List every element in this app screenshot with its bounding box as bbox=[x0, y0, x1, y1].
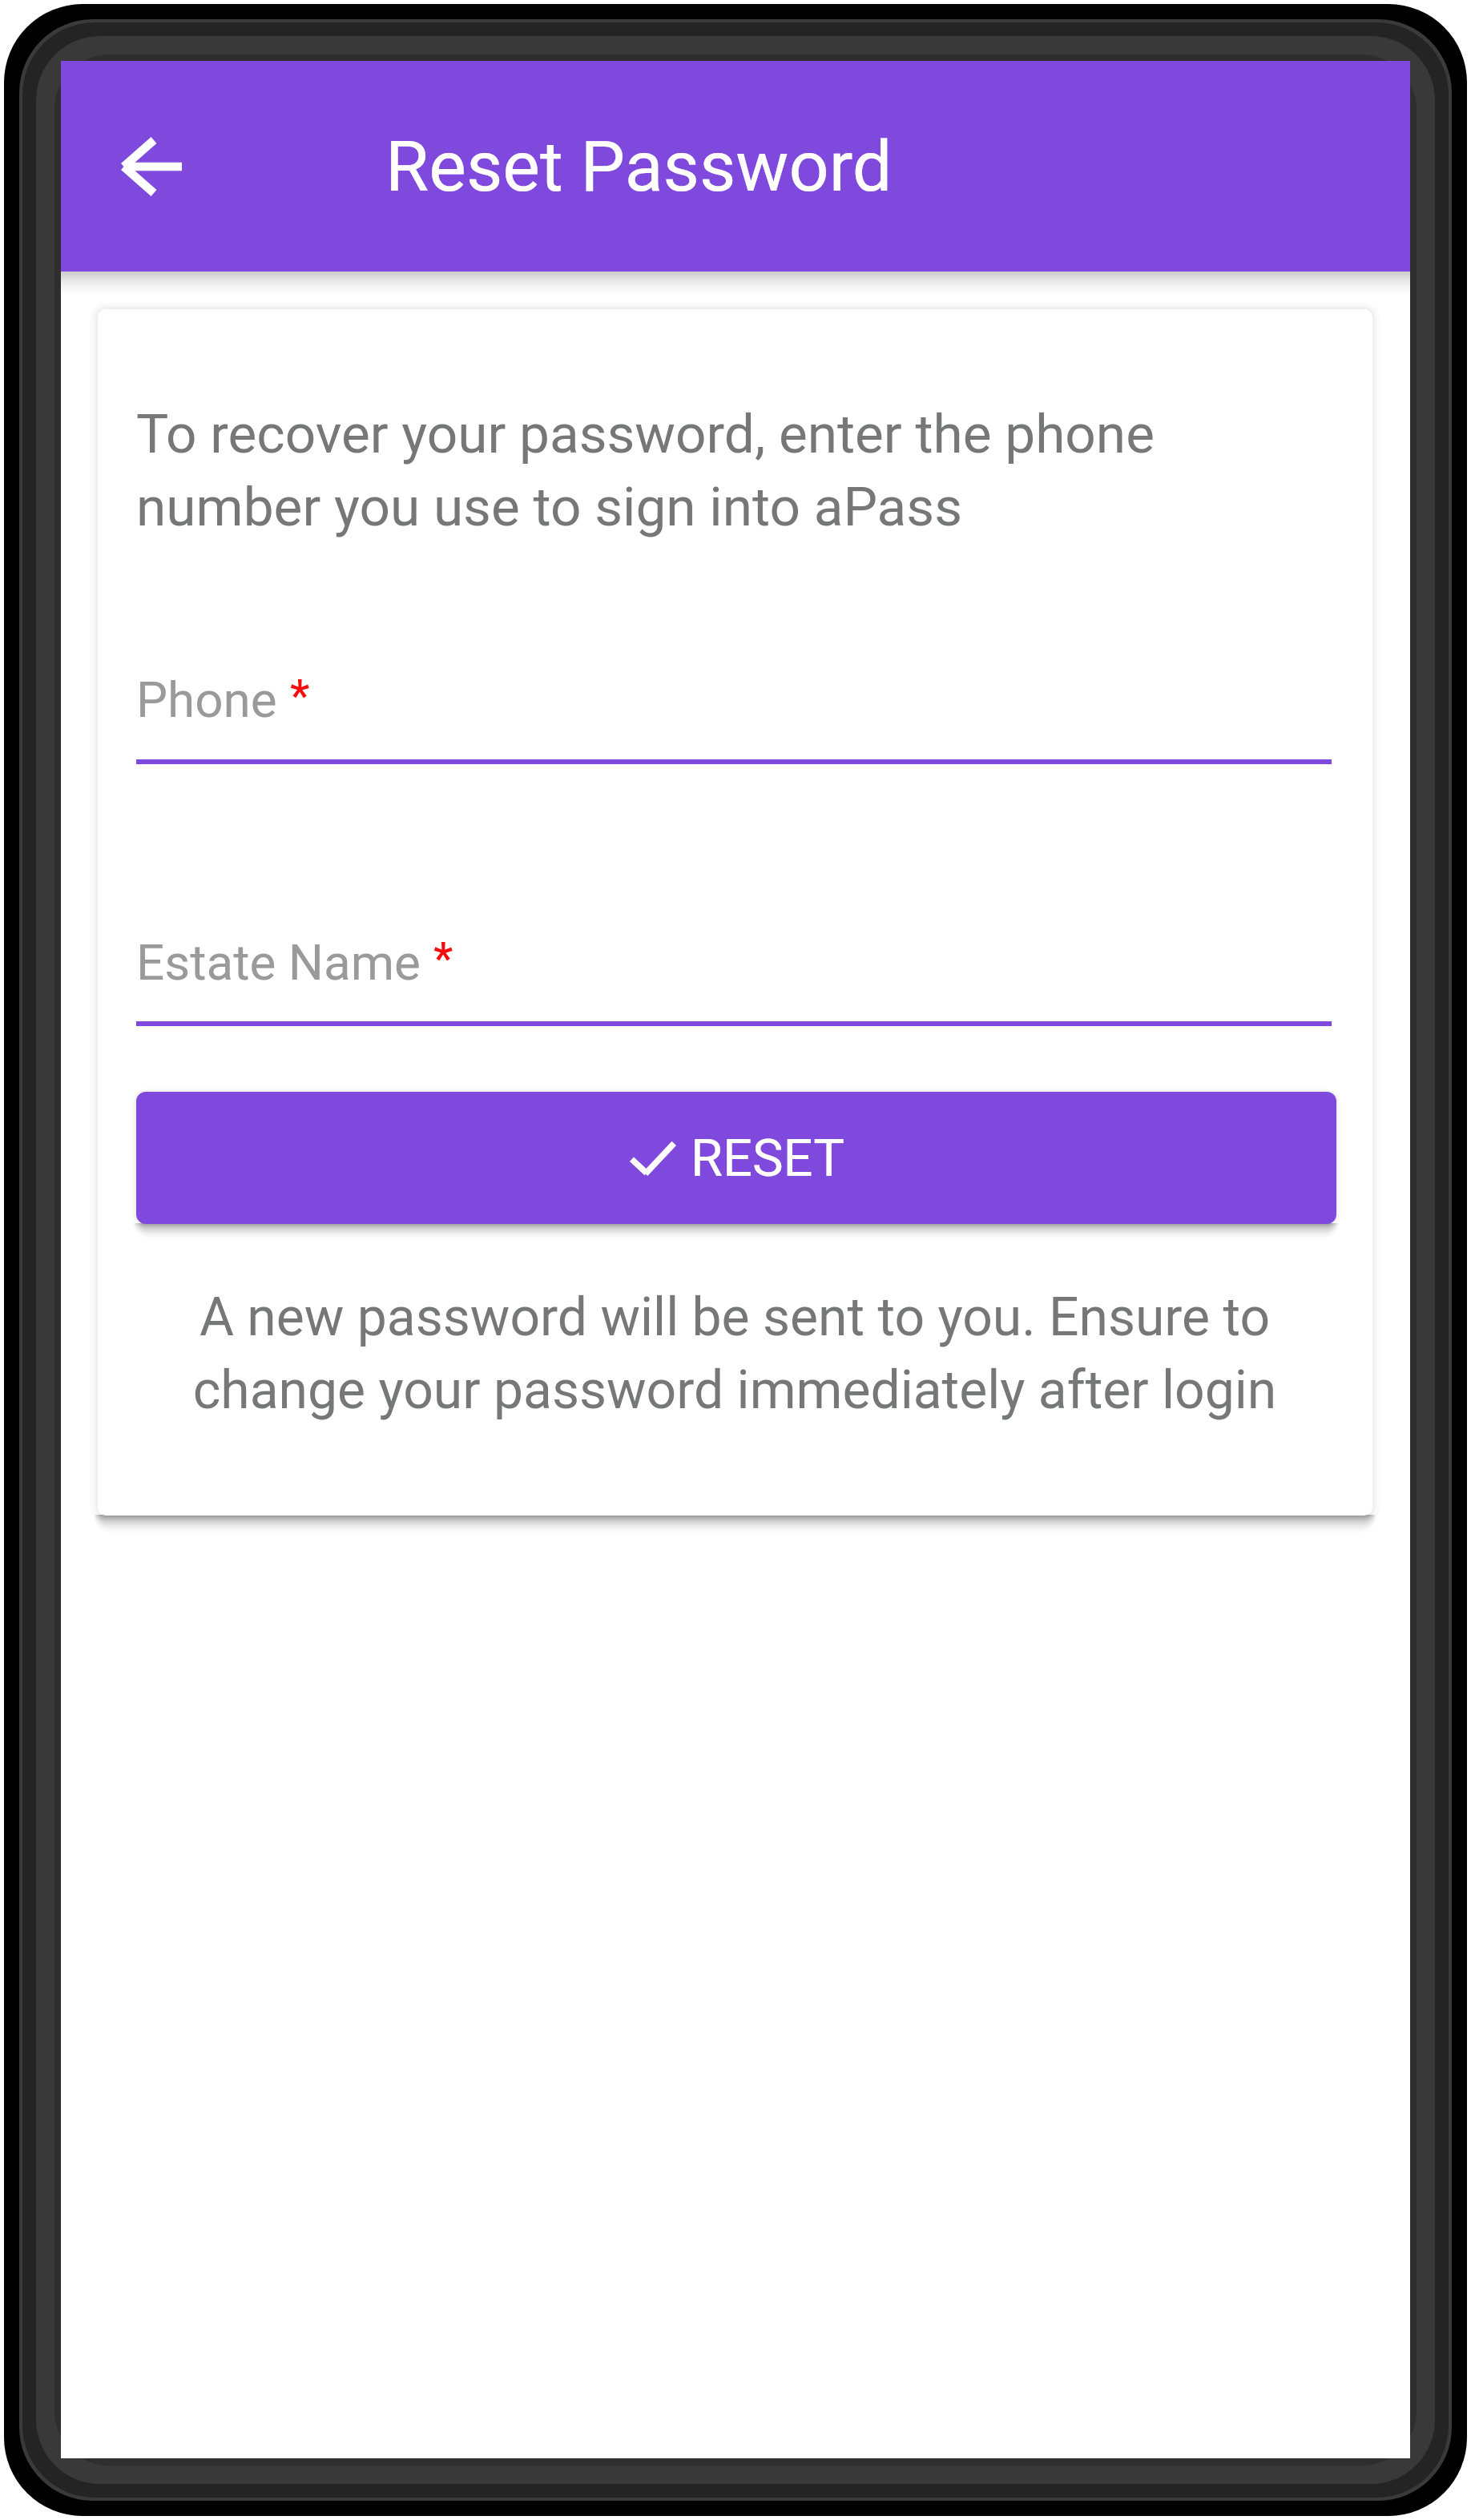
staticText: * bbox=[290, 670, 310, 722]
staticText: RESET bbox=[691, 1128, 844, 1189]
staticText: To recover your password, enter the phon… bbox=[136, 402, 1210, 539]
button[interactable]: RESET bbox=[136, 1092, 1336, 1224]
staticText: A new password will be sent to you. Ensu… bbox=[146, 1286, 1324, 1421]
staticText: Phone bbox=[136, 670, 277, 729]
staticText: Estate Name bbox=[136, 933, 421, 992]
button[interactable]: Back bbox=[65, 103, 193, 231]
staticText: * bbox=[433, 933, 453, 984]
staticText: Reset Password bbox=[385, 125, 893, 207]
